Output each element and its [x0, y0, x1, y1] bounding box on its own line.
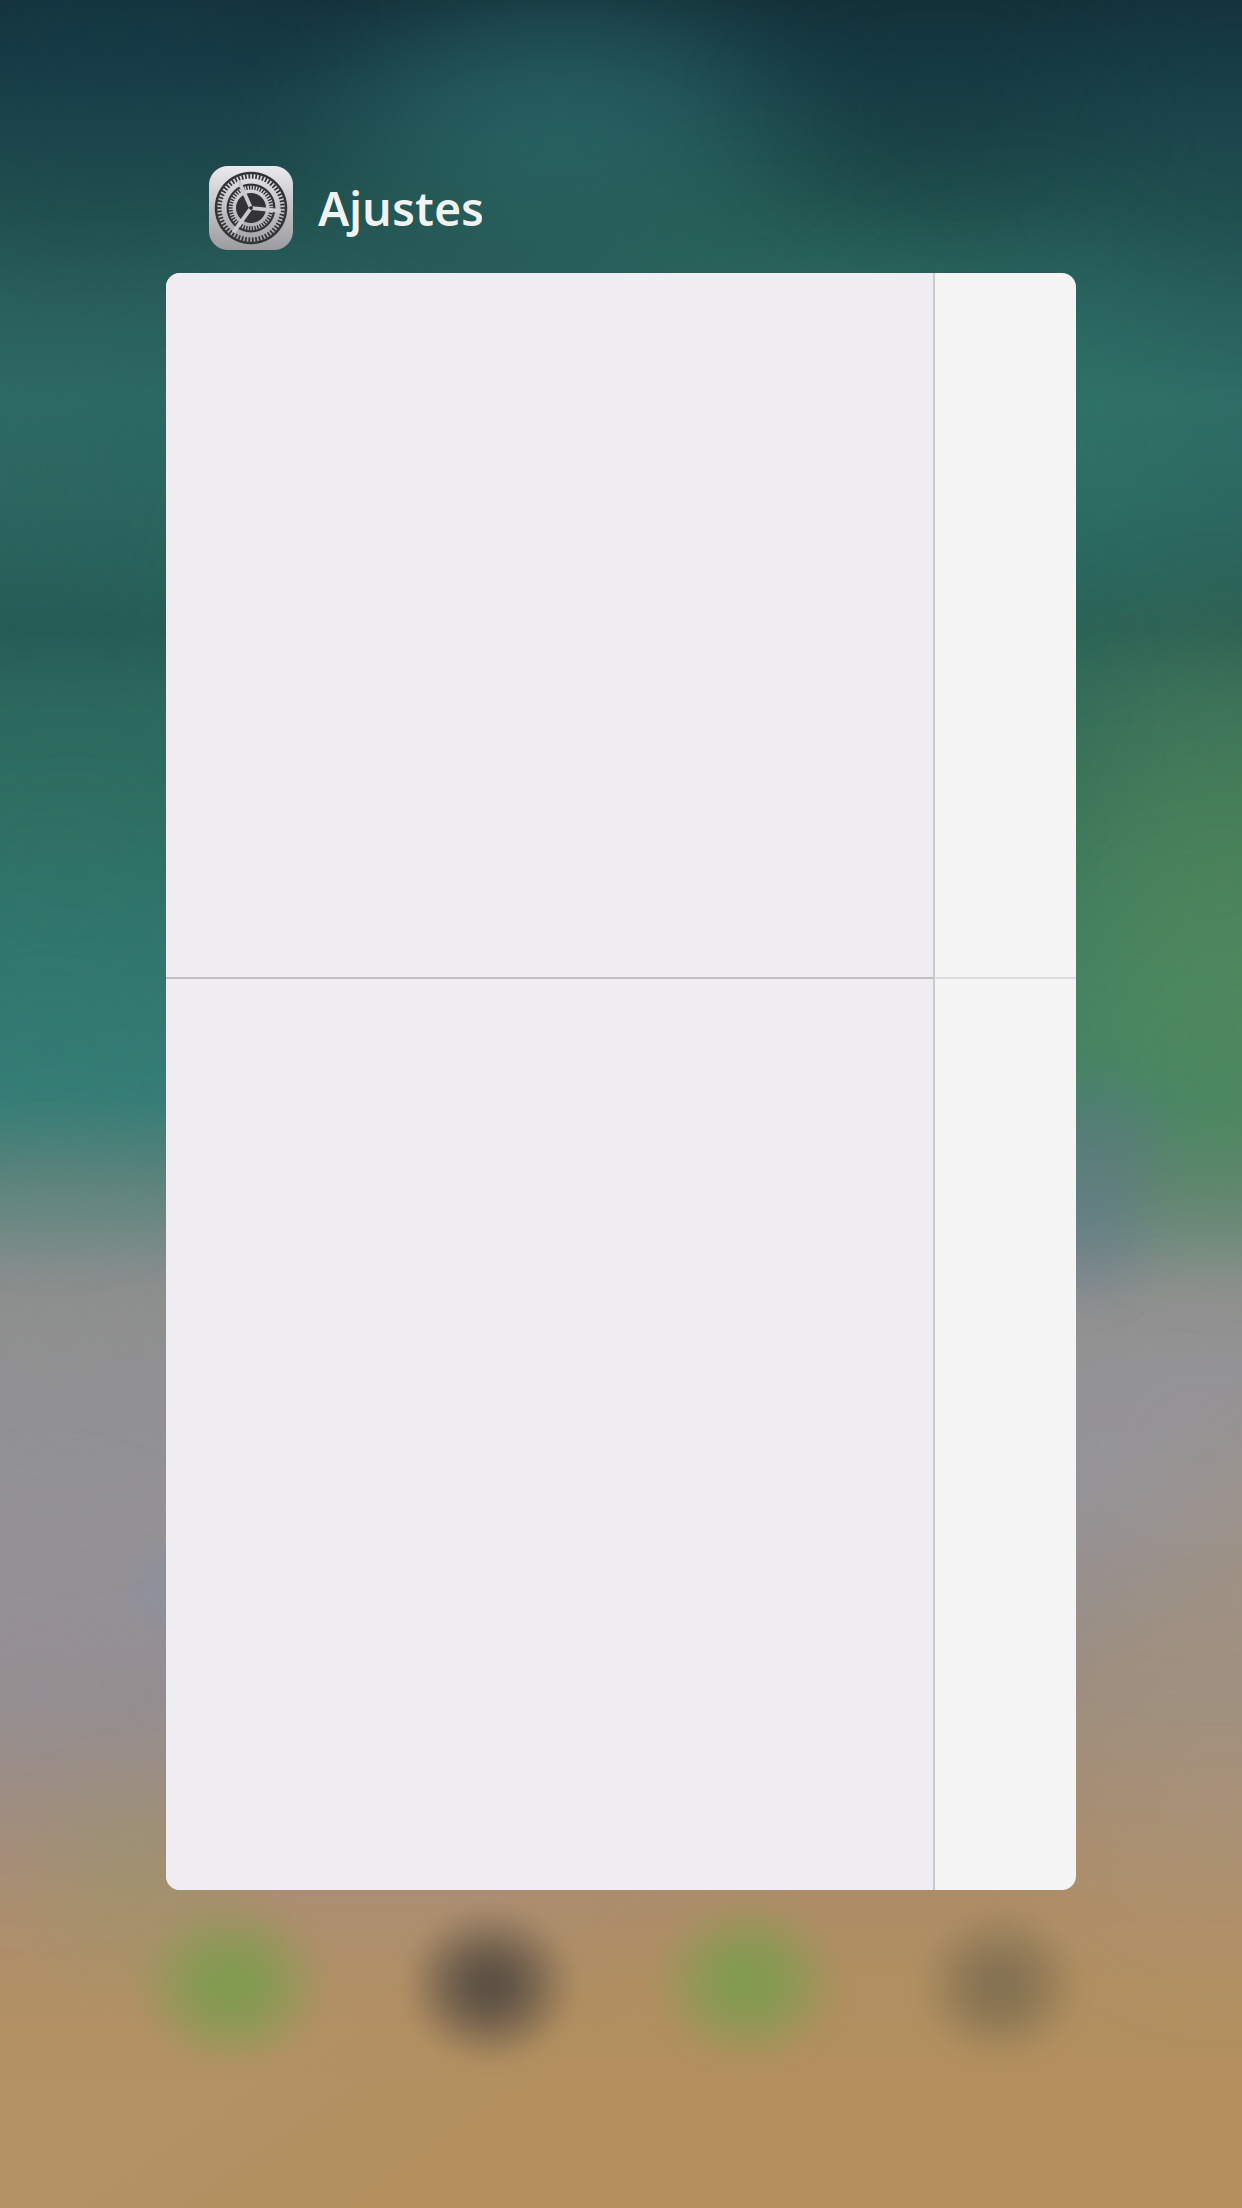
button[interactable]	[166, 273, 1076, 1890]
staticText: Ajustes	[318, 177, 484, 239]
